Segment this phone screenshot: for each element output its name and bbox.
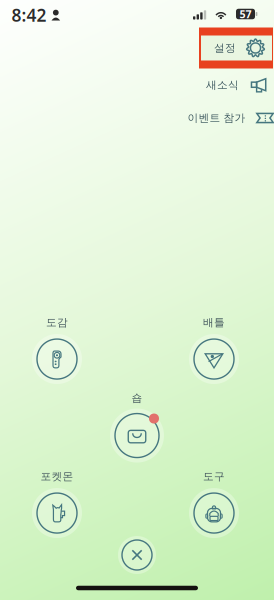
staticText: 새소식 — [206, 78, 239, 91]
button[interactable]: 도감 — [22, 318, 92, 382]
button[interactable]: 새소식 — [206, 75, 268, 94]
staticText: 57 — [239, 7, 251, 21]
button[interactable]: 숍 — [102, 392, 172, 462]
button[interactable]: 배틀 — [179, 318, 249, 382]
staticText: 8:42 — [11, 3, 46, 26]
button[interactable]: 설정 — [201, 35, 272, 60]
staticText: 이벤트 참가 — [187, 111, 245, 124]
staticText: 설정 — [214, 41, 236, 54]
staticText: 도감 — [46, 316, 68, 329]
button[interactable]: 포켓몬 — [22, 472, 92, 536]
button[interactable]: 이벤트 참가 — [187, 108, 274, 127]
staticText: 도구 — [203, 470, 225, 483]
staticText: 포켓몬 — [40, 470, 73, 483]
button[interactable]: Close — [118, 536, 156, 574]
button[interactable]: 도구 — [179, 472, 249, 536]
staticText: 배틀 — [203, 316, 225, 329]
staticText: 숍 — [131, 391, 142, 404]
